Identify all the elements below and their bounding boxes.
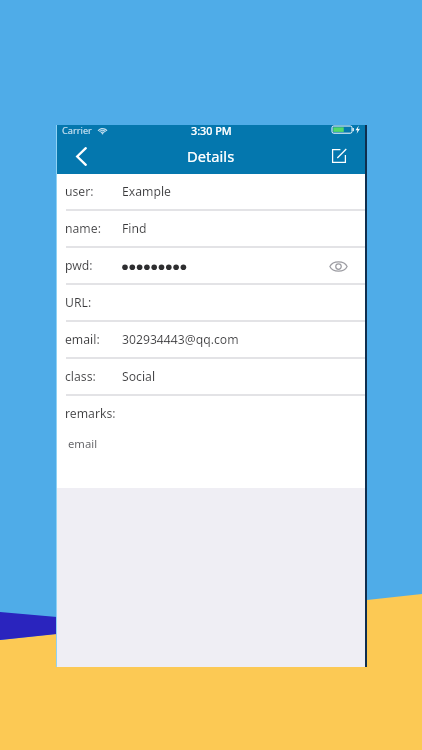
staticText: user: <box>65 183 94 200</box>
staticText: email: <box>65 331 100 348</box>
staticText: pwd: <box>65 257 93 274</box>
button[interactable]: pwd: <box>57 248 365 285</box>
button[interactable]: Edit <box>317 143 365 174</box>
staticText: name: <box>65 220 101 237</box>
staticText: Example <box>122 183 171 200</box>
button[interactable]: remarks: <box>57 396 365 456</box>
staticText: Social <box>122 368 156 385</box>
staticText: remarks: <box>65 405 116 422</box>
button[interactable]: email: <box>57 322 365 359</box>
staticText: Find <box>122 220 147 237</box>
button[interactable]: name: <box>57 211 365 248</box>
button[interactable]: user: <box>57 174 365 211</box>
button[interactable]: class: <box>57 359 365 396</box>
button[interactable]: URL: <box>57 285 365 322</box>
staticText: 3:30 PM <box>191 123 232 138</box>
button[interactable]: Back <box>57 143 105 174</box>
staticText: 302934443@qq.com <box>122 331 239 348</box>
staticText: URL: <box>65 294 92 311</box>
staticText: email <box>68 436 98 451</box>
button[interactable]: Show password <box>327 255 349 277</box>
staticText: Carrier <box>62 124 92 137</box>
staticText: Details <box>187 146 235 166</box>
staticText: class: <box>65 368 96 385</box>
